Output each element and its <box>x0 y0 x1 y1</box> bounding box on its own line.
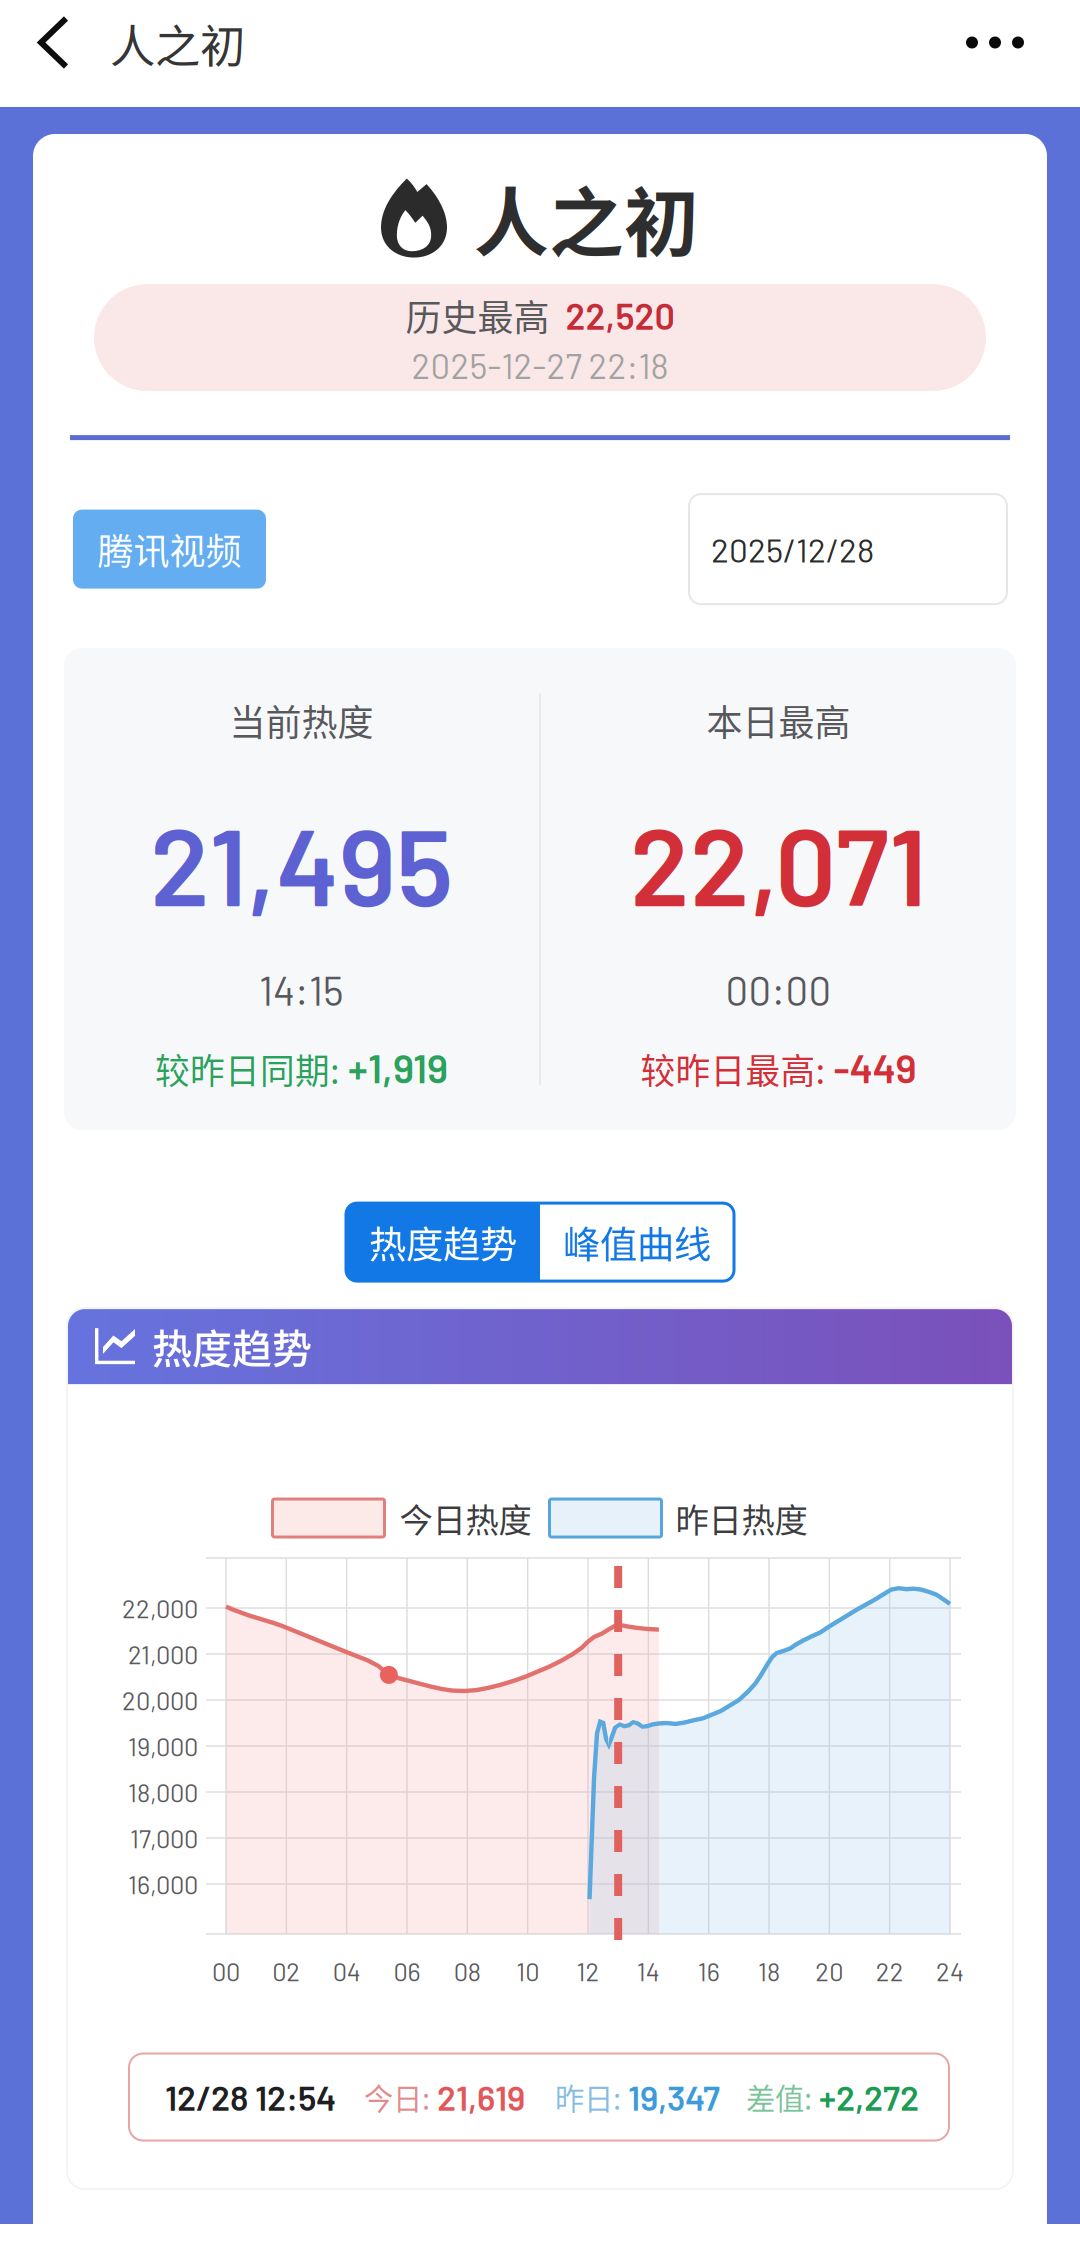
staticText: 12 <box>576 1956 599 1986</box>
button[interactable]: Back <box>0 0 110 106</box>
staticText: 00 <box>212 1956 240 1986</box>
staticText: 今日: <box>364 2076 437 2118</box>
staticText: 人之初 <box>110 11 245 76</box>
staticText: 12/28 12:54 <box>165 2076 336 2118</box>
staticText: 18 <box>758 1956 780 1986</box>
staticText: 差值: <box>746 2076 819 2118</box>
staticText: 本日最高 <box>706 694 850 746</box>
staticText: 21,000 <box>128 1639 198 1669</box>
staticText: 昨日: <box>555 2076 628 2118</box>
staticText: +2,272 <box>819 2076 919 2118</box>
staticText: 20,000 <box>122 1685 198 1715</box>
staticText: 19,000 <box>128 1731 198 1761</box>
staticText: 较昨日最高: -449 <box>640 1044 916 1093</box>
staticText: 17,000 <box>130 1823 198 1853</box>
button[interactable]: More options <box>922 4 1080 102</box>
staticText: 昨日热度 <box>675 1494 807 1542</box>
staticText: 较昨日同期: +1,919 <box>155 1044 448 1093</box>
staticText: 21,619 <box>437 2076 525 2118</box>
staticText: 热度趋势 <box>152 1317 312 1375</box>
staticText: 00:00 <box>725 966 831 1014</box>
staticText: 02 <box>272 1956 300 1986</box>
staticText: 14 <box>637 1956 660 1986</box>
staticText: 今日热度 <box>399 1494 531 1542</box>
staticText: 22,071 <box>630 798 927 928</box>
button[interactable]: 热度趋势 <box>346 1203 540 1281</box>
staticText: 04 <box>333 1956 361 1986</box>
staticText: 16 <box>698 1956 720 1986</box>
staticText: 2025-12-27 22:18 <box>411 344 668 386</box>
staticText: 22,000 <box>122 1593 198 1623</box>
button[interactable]: 2025/12/28 <box>689 494 1007 604</box>
staticText: 06 <box>393 1956 420 1986</box>
staticText: 22,520 <box>565 294 674 337</box>
staticText: 腾讯视频 <box>97 523 241 575</box>
staticText: 20 <box>815 1956 843 1986</box>
staticText: 22 <box>876 1956 904 1986</box>
staticText: 热度趋势 <box>369 1215 517 1269</box>
staticText: 14:15 <box>259 966 344 1014</box>
staticText: 10 <box>516 1956 539 1986</box>
staticText: 峰值曲线 <box>563 1215 711 1269</box>
button[interactable]: 腾讯视频 <box>73 510 266 589</box>
staticText: 16,000 <box>128 1869 198 1899</box>
staticText: 24 <box>936 1956 964 1986</box>
staticText: 当前热度 <box>229 694 373 746</box>
staticText: 18,000 <box>128 1777 198 1807</box>
staticText: 08 <box>454 1956 481 1986</box>
staticText: 2025/12/28 <box>711 529 874 569</box>
staticText: 历史最高 <box>405 289 549 341</box>
staticText: 人之初 <box>474 164 699 272</box>
staticText: 19,347 <box>628 2076 720 2118</box>
button[interactable]: 峰值曲线 <box>540 1203 734 1281</box>
staticText: 21,495 <box>150 798 453 928</box>
